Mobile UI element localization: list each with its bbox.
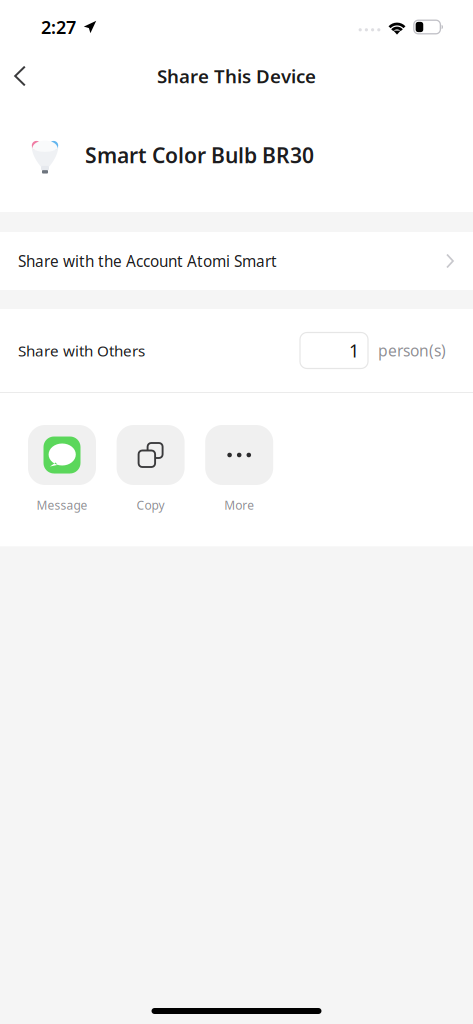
staticText: Share This Device	[157, 63, 316, 89]
button[interactable]: Share with the Account Atomi Smart	[0, 232, 473, 290]
button[interactable]: More	[205, 425, 273, 513]
staticText: Copy	[137, 497, 165, 513]
staticText: 1	[349, 338, 359, 363]
staticText: Share with Others	[18, 340, 145, 361]
staticText: 2:27	[41, 15, 76, 39]
staticText: Smart Color Bulb BR30	[85, 141, 314, 169]
button[interactable]: Back	[0, 54, 42, 97]
button[interactable]: Message	[28, 425, 96, 513]
button[interactable]: Copy	[117, 425, 185, 513]
staticText: More	[224, 497, 254, 513]
staticText: Message	[36, 497, 87, 513]
staticText: person(s)	[378, 340, 446, 361]
staticText: Share with the Account Atomi Smart	[18, 251, 277, 271]
